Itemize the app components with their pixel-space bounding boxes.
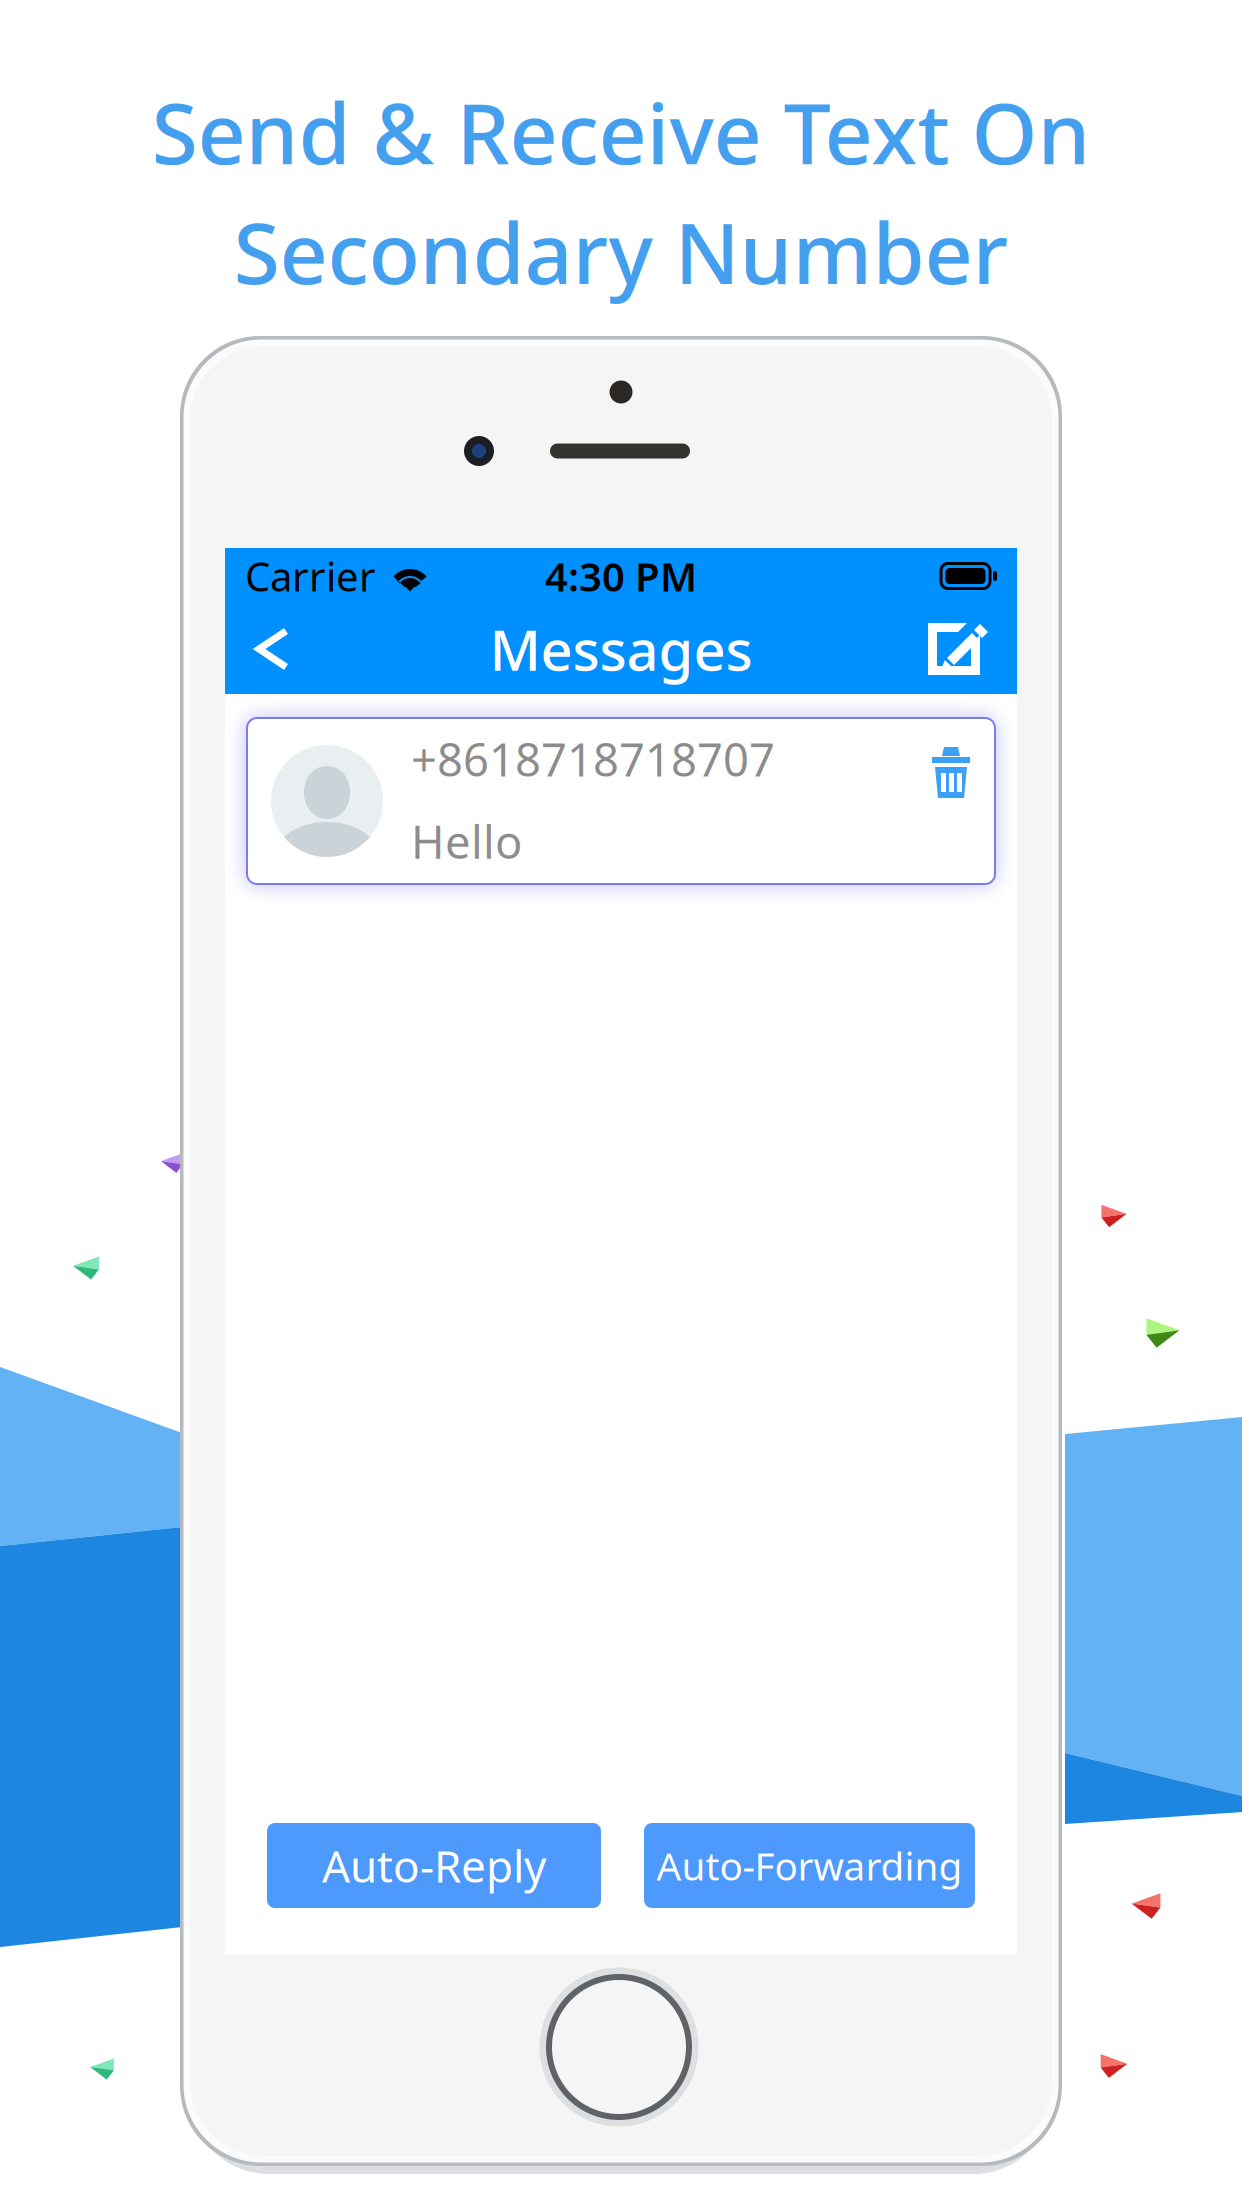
button[interactable]: Back (243, 606, 302, 692)
staticText: Auto-Reply (322, 1836, 546, 1895)
staticText: 4:30 PM (545, 549, 697, 602)
staticText: Secondary Number (233, 195, 1008, 307)
staticText: Send & Receive Text On (151, 76, 1090, 187)
staticText: Hello (411, 811, 522, 871)
button[interactable]: Delete conversation (931, 745, 971, 800)
button[interactable]: Auto-Reply (267, 1823, 601, 1908)
staticText: Auto-Forwarding (656, 1840, 962, 1891)
button[interactable]: Auto-Forwarding (644, 1823, 975, 1908)
button[interactable]: Compose message (917, 605, 999, 693)
staticText: Carrier (245, 549, 376, 602)
staticText: Messages (489, 612, 752, 686)
staticText: +8618718718707 (411, 729, 775, 789)
